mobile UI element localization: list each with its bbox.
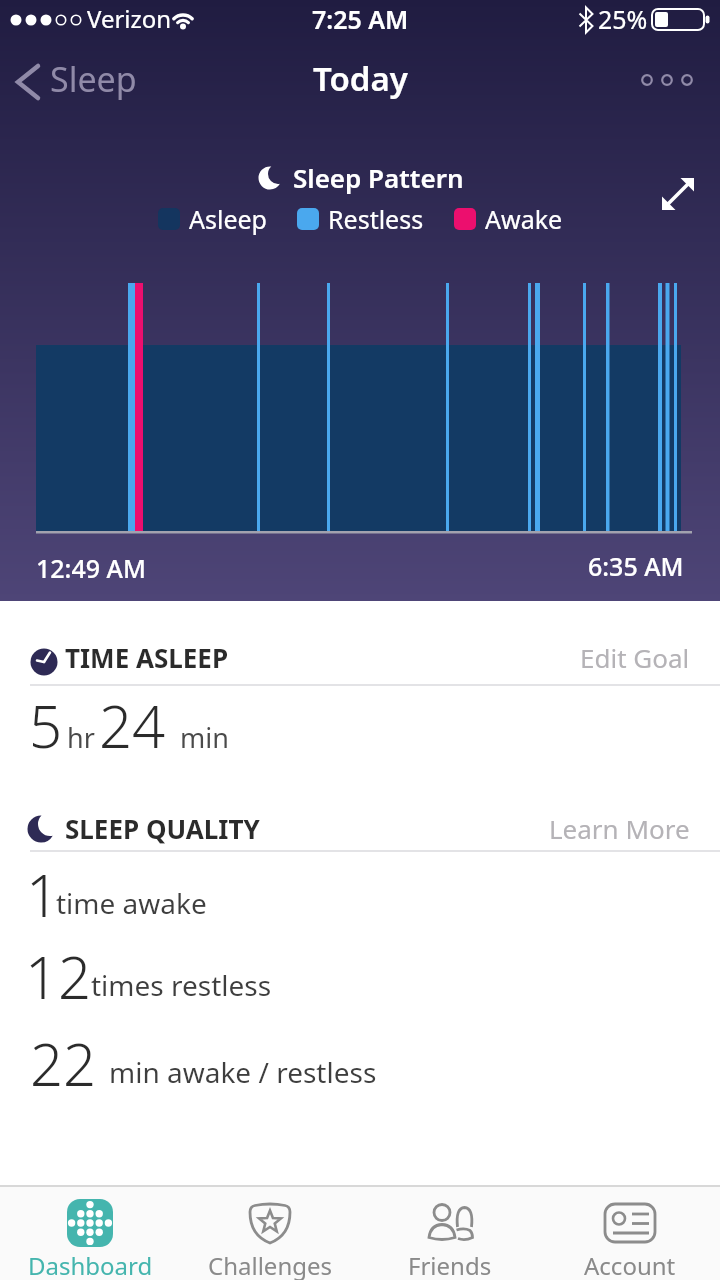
- staticText: Sleep Pattern: [293, 160, 464, 195]
- staticText: Sleep: [50, 56, 137, 102]
- staticText: hr: [67, 719, 95, 756]
- button[interactable]: Sleep: [13, 56, 137, 102]
- staticText: Dashboard: [28, 1249, 153, 1280]
- staticText: min awake / restless: [109, 1053, 377, 1091]
- staticText: times restless: [91, 966, 272, 1004]
- staticText: Verizon: [87, 2, 172, 35]
- staticText: 6:35 AM: [588, 549, 684, 583]
- staticText: 1: [26, 855, 60, 934]
- staticText: Edit Goal: [580, 640, 690, 675]
- button[interactable]: [633, 64, 701, 96]
- staticText: 7:25 AM: [312, 2, 409, 36]
- button[interactable]: Friends: [360, 1187, 540, 1280]
- staticText: Friends: [408, 1249, 492, 1280]
- staticText: Challenges: [208, 1249, 333, 1280]
- button[interactable]: Account: [540, 1187, 720, 1280]
- staticText: 25%: [598, 2, 648, 36]
- staticText: SLEEP QUALITY: [65, 811, 260, 846]
- staticText: time awake: [56, 884, 207, 922]
- button[interactable]: Dashboard: [0, 1187, 180, 1280]
- button[interactable]: Challenges: [180, 1187, 360, 1280]
- staticText: Learn More: [549, 811, 690, 846]
- staticText: 5: [29, 686, 63, 765]
- staticText: Awake: [485, 202, 563, 236]
- staticText: Today: [313, 56, 408, 101]
- staticText: Asleep: [189, 202, 267, 236]
- staticText: Account: [584, 1249, 676, 1280]
- staticText: Restless: [328, 202, 424, 236]
- staticText: 22: [30, 1024, 97, 1103]
- button[interactable]: Edit Goal: [420, 640, 690, 675]
- staticText: min: [180, 719, 229, 756]
- staticText: TIME ASLEEP: [65, 640, 229, 675]
- staticText: 12: [25, 937, 92, 1016]
- staticText: 24: [99, 686, 166, 765]
- button[interactable]: Learn More: [420, 811, 690, 846]
- button[interactable]: [656, 170, 702, 216]
- staticText: 12:49 AM: [36, 551, 146, 585]
